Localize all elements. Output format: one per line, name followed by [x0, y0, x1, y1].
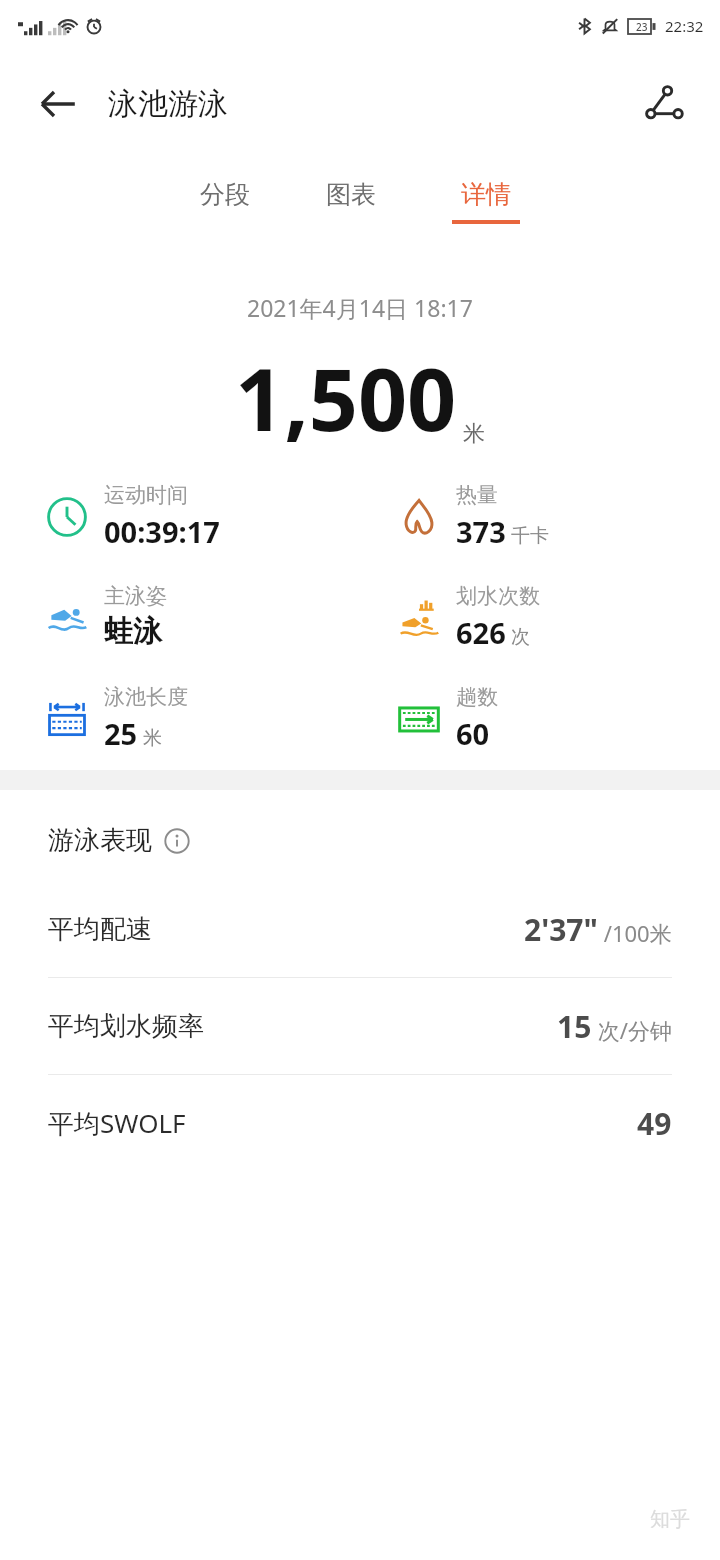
staticText: 次/分钟: [592, 1015, 672, 1045]
staticText: 49: [637, 1103, 672, 1144]
button[interactable]: 趟数: [360, 684, 720, 753]
button[interactable]: 图表: [318, 175, 384, 228]
staticText: 373: [456, 512, 506, 551]
staticText: 平均SWOLF: [48, 1105, 186, 1141]
button[interactable]: 分享: [636, 76, 692, 132]
staticText: 热量: [456, 482, 498, 508]
staticText: 2021年4月14日 18:17: [247, 292, 473, 323]
staticText: 泳池游泳: [108, 85, 228, 123]
button[interactable]: 主泳姿: [0, 583, 360, 650]
staticText: 次: [511, 625, 530, 649]
staticText: 趟数: [456, 684, 498, 710]
staticText: 1,500: [235, 339, 457, 456]
staticText: 泳池长度: [104, 684, 188, 710]
button[interactable]: 返回: [32, 78, 84, 130]
staticText: 知乎: [650, 1507, 690, 1532]
staticText: 主泳姿: [104, 583, 167, 609]
staticText: 平均配速: [48, 913, 152, 946]
staticText: /100米: [598, 918, 672, 948]
staticText: 蛙泳: [104, 613, 162, 650]
button[interactable]: 说明: [162, 826, 192, 856]
staticText: 25: [104, 714, 138, 753]
button[interactable]: 平均SWOLF: [0, 1075, 720, 1171]
staticText: 平均划水频率: [48, 1010, 204, 1043]
button[interactable]: 热量: [360, 482, 720, 551]
staticText: 米: [463, 420, 485, 448]
staticText: 23: [636, 20, 648, 34]
staticText: 运动时间: [104, 482, 188, 508]
staticText: 米: [143, 726, 162, 750]
button[interactable]: 运动时间: [0, 482, 360, 551]
staticText: 千卡: [511, 524, 549, 548]
button[interactable]: 详情: [444, 175, 528, 228]
staticText: 00:39:17: [104, 512, 220, 551]
staticText: 2'37": [524, 909, 598, 950]
staticText: 60: [456, 714, 490, 753]
button[interactable]: 平均划水频率: [0, 978, 720, 1075]
button[interactable]: 分段: [192, 175, 258, 228]
staticText: 划水次数: [456, 583, 540, 609]
button[interactable]: 泳池长度: [0, 684, 360, 753]
staticText: 图表: [326, 179, 376, 210]
staticText: 分段: [200, 179, 250, 210]
staticText: 游泳表现: [48, 824, 152, 857]
staticText: 22:32: [665, 16, 704, 36]
staticText: 15: [557, 1006, 592, 1047]
staticText: 详情: [461, 179, 511, 210]
staticText: 626: [456, 613, 506, 652]
button[interactable]: 平均配速: [0, 881, 720, 978]
button[interactable]: 划水次数: [360, 583, 720, 652]
